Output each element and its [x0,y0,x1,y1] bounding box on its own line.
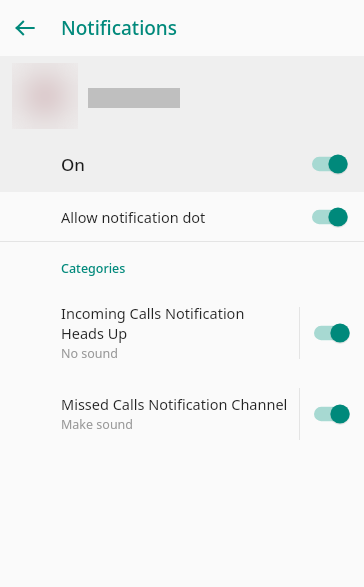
staticText: Missed Calls Notification Channel [61,394,288,414]
staticText: Heads Up [61,323,128,343]
button[interactable]: Allow notification dot [0,192,364,241]
button[interactable]: Missed Calls Notification Channel [0,386,364,441]
button[interactable]: On [0,136,364,192]
button[interactable] [0,56,364,136]
staticText: No sound [61,345,119,362]
staticText: Categories [61,260,126,277]
button[interactable]: Incoming Calls Notification [0,295,364,370]
button[interactable]: Toggle category [300,313,364,353]
button[interactable]: Back [13,16,37,40]
button[interactable]: Toggle category [300,394,364,434]
staticText: On [61,153,85,176]
staticText: Incoming Calls Notification [61,303,245,323]
staticText: Notifications [61,15,178,41]
staticText: Make sound [61,416,134,433]
staticText: Allow notification dot [61,207,206,227]
